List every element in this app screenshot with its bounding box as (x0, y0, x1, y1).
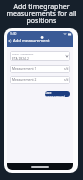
button[interactable]: Measurement 2 (10, 76, 70, 84)
staticText: s/d (64, 78, 69, 82)
staticText: Save measurement (45, 91, 70, 97)
staticText: Add measurement (13, 38, 50, 44)
button[interactable]: Measurement 1 (10, 65, 70, 73)
staticText: Watch / movement (12, 52, 34, 55)
button[interactable]: Save measurement (45, 91, 70, 97)
staticText: Measurement 1 (12, 66, 37, 70)
staticText: s/d (64, 67, 69, 71)
staticText: Add timegrapher measurements for all pos… (0, 2, 83, 25)
button[interactable]: Watch / movement (10, 51, 70, 61)
staticText: ETA 2824-2 (12, 56, 29, 60)
button[interactable]: Back (8, 39, 12, 43)
staticText: Measurement 2 (12, 77, 37, 81)
staticText: 9:30 (10, 32, 17, 36)
